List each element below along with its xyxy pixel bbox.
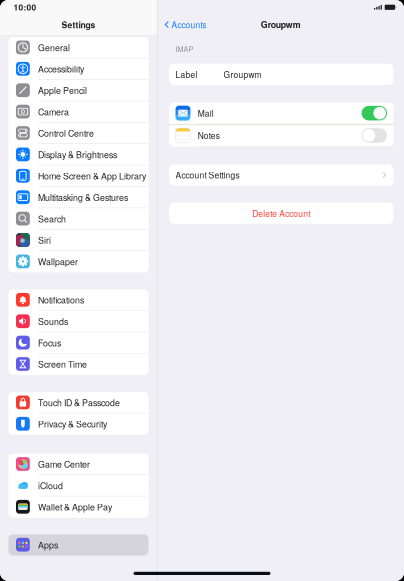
button[interactable]: Screen Time <box>8 354 149 375</box>
staticText: Focus <box>38 336 61 349</box>
staticText: Home Screen & App Library <box>38 169 146 182</box>
staticText: Control Centre <box>38 127 94 139</box>
staticText: Apps <box>38 538 58 551</box>
button[interactable]: Control Centre <box>8 123 149 144</box>
staticText: Label <box>176 68 198 80</box>
button[interactable]: Multitasking & Gestures <box>8 187 149 208</box>
button[interactable]: Apps <box>8 534 149 556</box>
staticText: Wallet & Apple Pay <box>38 500 112 513</box>
staticText: 10:00 <box>13 1 36 13</box>
button[interactable]: Delete Account <box>169 203 393 224</box>
staticText: Siri <box>38 234 51 246</box>
staticText: IMAP <box>175 44 193 54</box>
staticText: Apple Pencil <box>38 84 87 96</box>
staticText: Multitasking & Gestures <box>38 191 128 203</box>
button[interactable]: Sounds <box>8 311 149 332</box>
button[interactable]: Focus <box>8 332 149 354</box>
staticText: Display & Brightness <box>38 148 117 161</box>
staticText: Wallpaper <box>38 255 78 268</box>
button[interactable]: Wallet & Apple Pay <box>8 496 149 518</box>
staticText: Touch ID & Passcode <box>38 396 120 409</box>
staticText: Accounts <box>171 18 206 30</box>
button[interactable]: Home Screen & App Library <box>8 165 149 187</box>
button[interactable]: General <box>8 37 149 58</box>
button[interactable]: Wallpaper <box>8 251 149 272</box>
staticText: Mail <box>198 107 214 119</box>
button[interactable]: Notes <box>169 125 393 147</box>
staticText: Sounds <box>38 315 68 327</box>
button[interactable]: Display & Brightness <box>8 144 149 165</box>
staticText: Delete Account <box>252 207 310 219</box>
staticText: Accessibility <box>38 62 84 75</box>
button[interactable]: Mail <box>169 103 393 124</box>
staticText: Privacy & Security <box>38 417 107 430</box>
button[interactable]: Search <box>8 208 149 230</box>
staticText: iCloud <box>38 479 63 492</box>
staticText: Notifications <box>38 293 84 306</box>
staticText: General <box>38 41 70 54</box>
button[interactable]: Privacy & Security <box>8 413 149 435</box>
staticText: Notes <box>198 129 220 141</box>
button[interactable]: Accessibility <box>8 58 149 80</box>
staticText: Account Settings <box>176 169 240 181</box>
button[interactable]: Accounts <box>158 15 210 33</box>
button[interactable]: iCloud <box>8 475 149 496</box>
button[interactable]: Account Settings <box>169 164 393 186</box>
staticText: Screen Time <box>38 358 87 370</box>
staticText: Camera <box>38 105 69 118</box>
staticText: Groupwm <box>261 18 301 31</box>
button[interactable]: Siri <box>8 230 149 251</box>
staticText: Groupwm <box>224 68 262 80</box>
button[interactable]: Notifications <box>8 289 149 311</box>
button[interactable]: Camera <box>8 101 149 123</box>
button[interactable]: Apple Pencil <box>8 80 149 101</box>
staticText: Game Center <box>38 458 90 470</box>
staticText: Search <box>38 212 66 225</box>
button[interactable]: Touch ID & Passcode <box>8 392 149 413</box>
button[interactable]: Game Center <box>8 454 149 475</box>
staticText: Settings <box>61 19 95 31</box>
